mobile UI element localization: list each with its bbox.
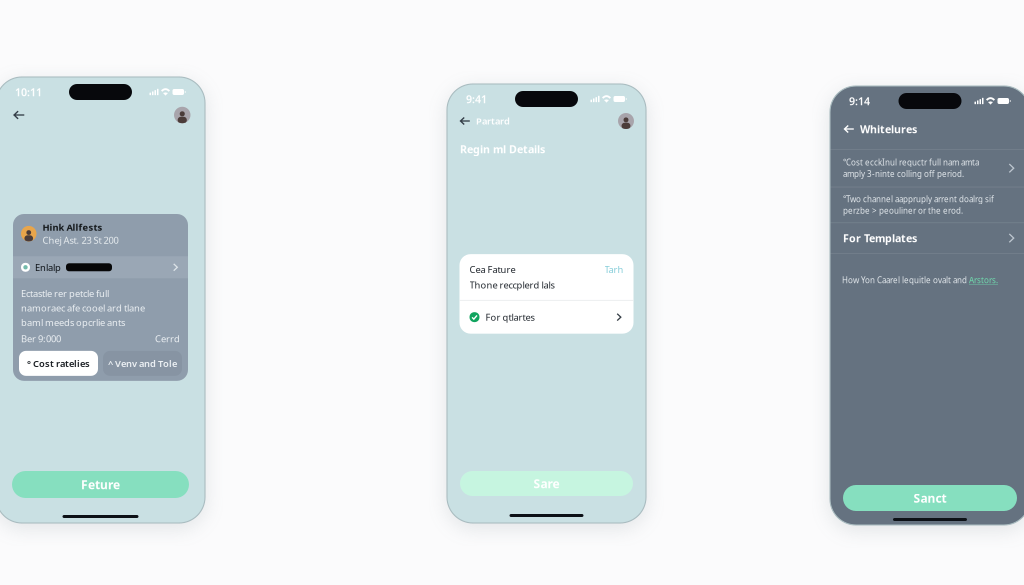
button[interactable]: For Templates [830,223,1024,253]
staticText: Enlalp [35,261,61,273]
staticText: Whitelures [860,122,917,136]
staticText: 9:14 [849,94,870,108]
button[interactable]: Enlalp [13,256,188,278]
staticText: ^ Venv and Tole [108,357,177,370]
staticText: Ectastle rer petcle full [21,287,109,300]
staticText: baml meeds opcrlie ants [21,316,125,328]
staticText: namoraec afe cooel ard tlane [21,302,145,314]
staticText: Arstors. [969,275,998,285]
staticText: For qtlartes [485,311,534,323]
button[interactable]: Partard [456,111,514,131]
staticText: Hink Allfests [42,221,102,233]
staticText: perzbe > peouliner or the erod. [843,205,963,216]
staticText: Cerrd [155,332,180,345]
button[interactable]: Back [7,103,30,126]
staticText: Thone reccplerd lals [469,279,554,291]
staticText: 9:41 [466,92,487,106]
button[interactable]: Sare [460,471,633,496]
staticText: Tarh [604,263,623,276]
button[interactable]: °Cost ecckInul requctr full nam amta [830,150,1024,187]
staticText: 10:11 [15,85,42,99]
staticText: Sare [533,475,559,491]
button[interactable]: Whitelures [840,118,921,140]
staticText: Ber 9:000 [21,332,61,345]
button[interactable]: Feture [12,471,189,498]
button[interactable]: Profile [615,110,637,132]
button[interactable]: ^ Venv and Tole [103,351,182,376]
staticText: How Yon Caarel lequitle ovalt and [842,275,969,285]
button[interactable]: Arstors. [969,275,998,285]
staticText: Cea Fature [469,263,515,276]
button[interactable]: Profile [171,104,193,126]
staticText: Sanct [913,490,946,506]
staticText: ° Cost ratelies [27,357,90,370]
staticText: Regin ml Details [460,142,545,156]
staticText: For Templates [843,231,917,245]
staticText: Chej Ast. 23 St 200 [42,234,118,246]
button[interactable]: ° Cost ratelies [19,351,98,376]
staticText: °Cost ecckInul requctr full nam amta [843,157,979,168]
button[interactable]: For qtlartes [459,301,633,334]
staticText: °Two channel aappruply arrent doalrg sif [843,194,994,204]
staticText: Feture [81,476,120,492]
button[interactable]: Sanct [843,485,1017,511]
staticText: Partard [476,115,510,127]
staticText: amply 3-ninte colling off period. [843,169,964,179]
